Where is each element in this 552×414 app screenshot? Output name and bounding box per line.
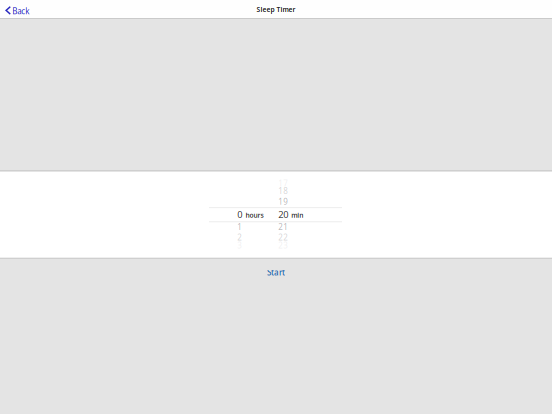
staticText: Start [267, 267, 285, 278]
staticText: 0 [237, 208, 242, 220]
staticText: 2 [237, 232, 242, 243]
staticText: 19 [278, 196, 288, 207]
staticText: Back [12, 6, 29, 16]
staticText: 22 [278, 232, 288, 243]
staticText: 18 [278, 186, 288, 196]
staticText: 17 [278, 178, 288, 189]
staticText: 20 [278, 208, 288, 220]
staticText: min [291, 211, 303, 220]
staticText: 21 [278, 221, 288, 232]
staticText: hours [245, 211, 263, 220]
staticText: 23 [278, 240, 288, 251]
button[interactable]: Back [0, 3, 29, 17]
staticText: 1 [237, 221, 242, 232]
staticText: 3 [237, 240, 242, 251]
button[interactable]: Start [216, 260, 336, 284]
staticText: Sleep Timer [256, 5, 295, 14]
